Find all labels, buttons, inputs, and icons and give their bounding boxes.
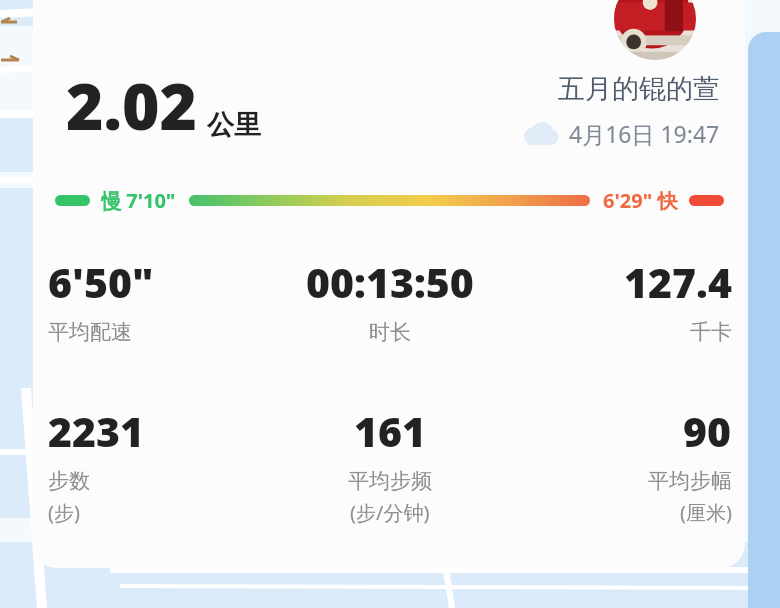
- staticText: 90: [683, 403, 732, 459]
- button[interactable]: 90: [504, 403, 732, 526]
- staticText: 五月的锟的萱: [558, 72, 720, 106]
- staticText: 161: [354, 403, 427, 459]
- button[interactable]: [33, 0, 745, 568]
- staticText: 00:13:50: [306, 254, 474, 310]
- button[interactable]: 五月的锟的萱: [522, 72, 720, 149]
- staticText: 慢 7'10": [101, 187, 176, 214]
- button[interactable]: 00:13:50: [276, 254, 504, 345]
- staticText: 127.4: [624, 254, 732, 310]
- staticText: 平均配速: [48, 319, 132, 345]
- button[interactable]: 2231: [48, 403, 276, 526]
- button[interactable]: 6'50": [48, 254, 276, 345]
- staticText: 2231: [48, 403, 145, 459]
- staticText: 平均步频: [348, 468, 432, 494]
- staticText: 千卡: [690, 319, 732, 345]
- staticText: 公里: [207, 108, 261, 142]
- staticText: (步/分钟): [350, 499, 430, 526]
- staticText: 6'29" 快: [603, 187, 678, 214]
- staticText: 2.02: [66, 62, 198, 149]
- staticText: 时长: [369, 319, 411, 345]
- staticText: 平均步幅: [648, 468, 732, 494]
- button[interactable]: 161: [276, 403, 504, 526]
- staticText: (厘米): [680, 499, 732, 526]
- staticText: 步数: [48, 468, 90, 494]
- button[interactable]: 127.4: [504, 254, 732, 345]
- staticText: 4月16日 19:47: [569, 118, 720, 149]
- staticText: 6'50": [48, 254, 154, 310]
- staticText: (步): [48, 499, 80, 526]
- button[interactable]: User avatar: [614, 0, 696, 60]
